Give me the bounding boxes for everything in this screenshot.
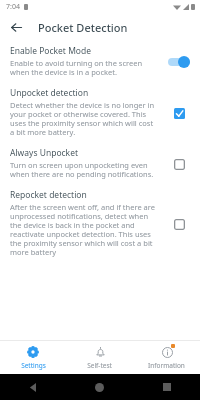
staticText: Unpocket detection: [10, 87, 89, 99]
button[interactable]: Repocket detection: [0, 189, 200, 258]
button[interactable]: Home: [66, 374, 133, 400]
button[interactable]: Enable Pocket Mode: [0, 45, 200, 78]
button[interactable]: Information: [133, 341, 200, 374]
button[interactable]: Recent apps: [133, 374, 200, 400]
button[interactable]: Checked: [171, 105, 187, 121]
staticText: Enable Pocket Mode: [10, 45, 92, 57]
button[interactable]: Always Unpocket: [0, 147, 200, 180]
button[interactable]: Back: [0, 374, 66, 400]
staticText: Always Unpocket: [10, 147, 79, 159]
staticText: 7:04: [6, 2, 20, 12]
button[interactable]: Unchecked: [171, 216, 187, 232]
staticText: Information: [148, 361, 185, 370]
staticText: Self-test: [87, 361, 112, 370]
staticText: Settings: [21, 361, 46, 370]
button[interactable]: Unpocket detection: [0, 87, 200, 138]
button[interactable]: Settings: [0, 341, 66, 374]
staticText: Repocket detection: [10, 189, 87, 201]
staticText: Detect whether the device is no longer i…: [10, 100, 158, 138]
staticText: After the screen went off, and if there …: [10, 202, 158, 258]
button[interactable]: Unchecked: [171, 156, 187, 172]
staticText: Enable to avoid turning on the screen wh…: [10, 58, 158, 78]
button[interactable]: Self-test: [66, 341, 133, 374]
staticText: Pocket Detection: [38, 20, 128, 35]
button[interactable]: Back: [7, 18, 25, 36]
staticText: Turn on screen upon unpocketing even whe…: [10, 160, 158, 180]
button[interactable]: Toggle Pocket Mode: [166, 54, 192, 70]
